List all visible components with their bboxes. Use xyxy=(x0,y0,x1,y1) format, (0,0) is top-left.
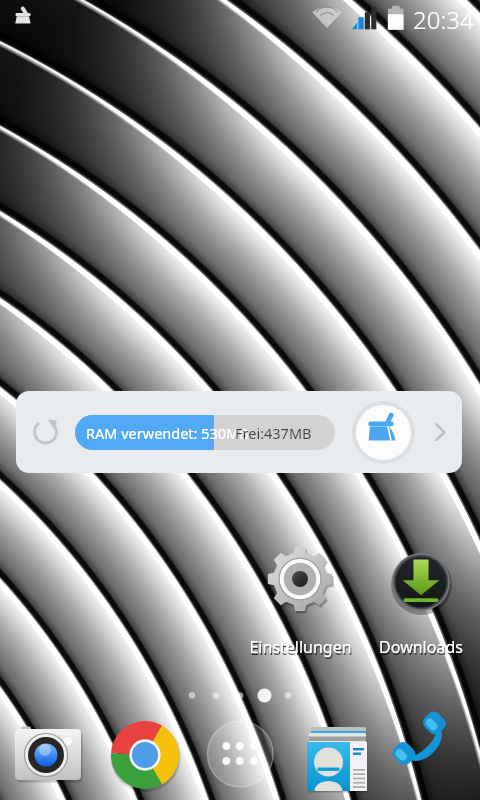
button[interactable]: Contacts xyxy=(303,722,373,792)
staticText: Frei:437MB xyxy=(235,423,312,443)
staticText: Einstellungen xyxy=(250,638,353,660)
button[interactable]: Camera xyxy=(13,722,83,792)
button[interactable]: Einstellungen xyxy=(242,540,358,658)
button[interactable]: Phone xyxy=(399,718,469,788)
button[interactable]: Clean memory xyxy=(352,401,415,464)
staticText: Einstellungen xyxy=(249,636,352,658)
button[interactable]: RAM verwendet: 530MB xyxy=(75,415,335,450)
button[interactable]: Chrome xyxy=(110,720,180,790)
staticText: Downloads xyxy=(379,636,463,658)
staticText: 20:34 xyxy=(413,3,474,36)
button[interactable]: All apps xyxy=(206,720,275,789)
button[interactable]: Downloads xyxy=(363,540,479,658)
button[interactable]: RAM verwendet: 530MB xyxy=(16,391,462,473)
staticText: RAM verwendet: 530MB xyxy=(86,423,249,443)
staticText: Downloads xyxy=(380,638,464,660)
